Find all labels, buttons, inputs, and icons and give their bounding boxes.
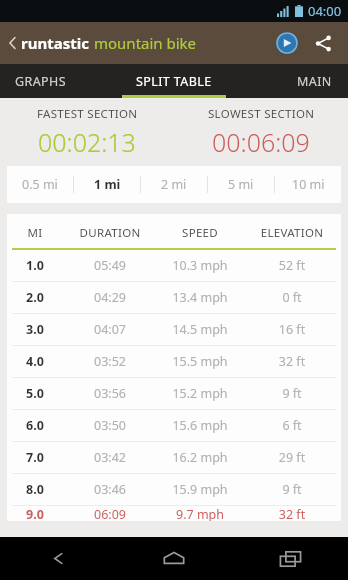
button[interactable]: GRAPHS xyxy=(0,64,116,98)
staticText: 3.0 xyxy=(7,321,63,338)
staticText: 8.0 xyxy=(7,481,63,498)
staticText: SLOWEST SECTION xyxy=(208,106,315,122)
staticText: MAIN xyxy=(297,73,332,90)
staticText: ELEVATION xyxy=(243,225,341,241)
other: Back xyxy=(8,35,17,51)
button[interactable]: Back xyxy=(0,537,116,580)
staticText: 1.0 xyxy=(7,257,63,274)
staticText: 16.2 mph xyxy=(157,449,243,466)
staticText: runtastic xyxy=(21,33,89,53)
button[interactable]: 3.0 xyxy=(7,314,341,345)
staticText: 15.6 mph xyxy=(157,417,243,434)
staticText: 0 ft xyxy=(243,289,341,306)
staticText: 14.5 mph xyxy=(157,321,243,338)
button[interactable]: Map xyxy=(270,26,304,60)
staticText: 10.3 mph xyxy=(157,257,243,274)
button[interactable]: 0.5 mi xyxy=(7,166,73,203)
staticText: 13.4 mph xyxy=(157,289,243,306)
staticText: 5.0 xyxy=(7,385,63,402)
staticText: 04:29 xyxy=(63,289,157,306)
button[interactable]: Recent apps xyxy=(232,537,348,580)
staticText: MI xyxy=(7,225,63,241)
staticText: 9 ft xyxy=(243,385,341,402)
staticText: SPLIT TABLE xyxy=(136,73,212,90)
button[interactable]: 5 mi xyxy=(208,166,274,203)
staticText: 00:02:13 xyxy=(38,125,136,159)
staticText: 03:42 xyxy=(63,449,157,466)
staticText: 15.5 mph xyxy=(157,353,243,370)
staticText: 15.9 mph xyxy=(157,481,243,498)
staticText: 7.0 xyxy=(7,449,63,466)
button[interactable]: 9.0 xyxy=(7,506,341,521)
button[interactable]: 7.0 xyxy=(7,442,341,473)
staticText: SPEED xyxy=(157,225,243,241)
staticText: 9 ft xyxy=(243,481,341,498)
staticText: 03:50 xyxy=(63,417,157,434)
staticText: 2 mi xyxy=(161,176,187,193)
staticText: 03:56 xyxy=(63,385,157,402)
staticText: 15.2 mph xyxy=(157,385,243,402)
staticText: 32 ft xyxy=(243,506,341,521)
button[interactable]: 6.0 xyxy=(7,410,341,441)
button[interactable]: 2 mi xyxy=(141,166,207,203)
staticText: 03:46 xyxy=(63,481,157,498)
staticText: 16 ft xyxy=(243,321,341,338)
staticText: 04:00 xyxy=(308,2,342,20)
staticText: 10 mi xyxy=(292,176,325,193)
staticText: 32 ft xyxy=(243,353,341,370)
staticText: 9.0 xyxy=(7,506,63,521)
staticText: 5 mi xyxy=(228,176,254,193)
button[interactable]: 8.0 xyxy=(7,474,341,505)
staticText: 0.5 mi xyxy=(22,176,58,193)
staticText: 29 ft xyxy=(243,449,341,466)
staticText: FASTEST SECTION xyxy=(37,106,138,122)
staticText: 6.0 xyxy=(7,417,63,434)
staticText: 04:07 xyxy=(63,321,157,338)
button[interactable]: 2.0 xyxy=(7,282,341,313)
staticText: 2.0 xyxy=(7,289,63,306)
staticText: 4.0 xyxy=(7,353,63,370)
staticText: 1 mi xyxy=(94,176,121,193)
button[interactable]: Back xyxy=(6,29,199,57)
staticText: DURATION xyxy=(63,225,157,241)
button[interactable]: 1 mi xyxy=(74,166,140,203)
button[interactable]: 1.0 xyxy=(7,250,341,281)
staticText: 52 ft xyxy=(243,257,341,274)
button[interactable]: Share xyxy=(306,26,340,60)
staticText: 00:06:09 xyxy=(212,125,310,159)
button[interactable]: SPLIT TABLE xyxy=(116,64,232,98)
staticText: mountain bike xyxy=(94,33,197,53)
staticText: 06:09 xyxy=(63,506,157,521)
button[interactable]: 5.0 xyxy=(7,378,341,409)
staticText: 05:49 xyxy=(63,257,157,274)
button[interactable]: 10 mi xyxy=(275,166,341,203)
staticText: 9.7 mph xyxy=(157,506,243,521)
staticText: GRAPHS xyxy=(15,73,66,90)
staticText: 6 ft xyxy=(243,417,341,434)
button[interactable]: 4.0 xyxy=(7,346,341,377)
button[interactable]: MAIN xyxy=(232,64,348,98)
staticText: 03:52 xyxy=(63,353,157,370)
button[interactable]: Home xyxy=(116,537,232,580)
